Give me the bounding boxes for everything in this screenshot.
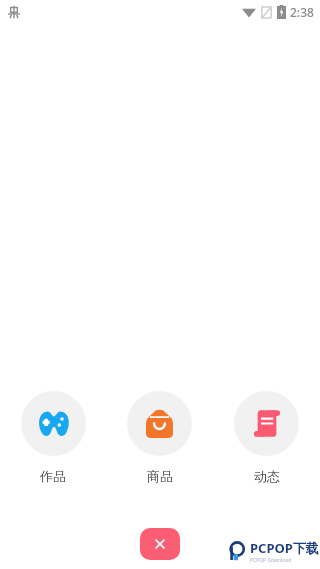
staticText: 2:38 bbox=[290, 4, 314, 20]
staticText: PCPOP下载 bbox=[250, 539, 319, 557]
button[interactable]: 商品 bbox=[106, 391, 213, 484]
staticText: 商品 bbox=[147, 468, 173, 484]
staticText: 作品 bbox=[40, 468, 66, 484]
staticText: PCPOP Download bbox=[250, 557, 292, 564]
button[interactable]: Close bbox=[140, 528, 180, 560]
staticText: 动态 bbox=[254, 468, 280, 484]
button[interactable]: 动态 bbox=[213, 391, 320, 484]
button[interactable]: 作品 bbox=[0, 391, 106, 484]
